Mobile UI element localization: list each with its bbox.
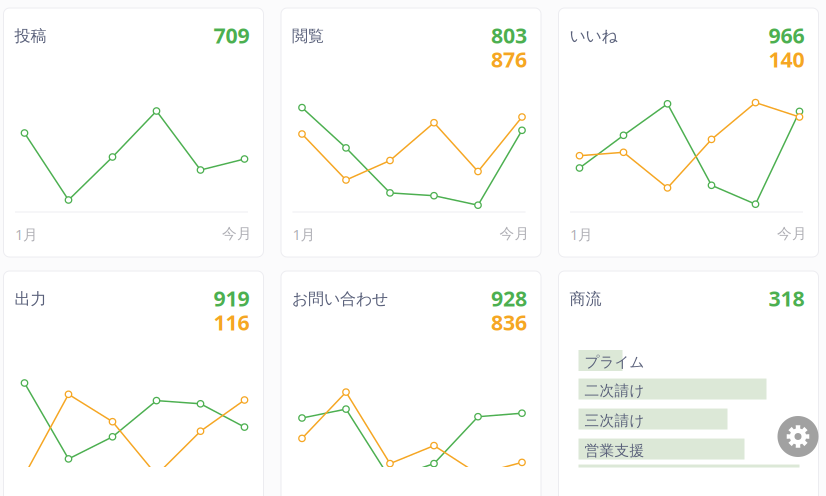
staticText: 商流 xyxy=(569,289,601,309)
staticText: 営業支援 xyxy=(584,441,644,459)
staticText: 803 xyxy=(491,21,527,49)
staticText: 1月 xyxy=(570,224,593,244)
staticText: 140 xyxy=(768,45,804,73)
staticText: 966 xyxy=(768,21,804,49)
staticText: 836 xyxy=(491,308,527,336)
staticText: 1月 xyxy=(15,224,38,244)
staticText: 三次請け xyxy=(584,411,644,429)
button[interactable]: 投稿 xyxy=(3,8,263,257)
button[interactable]: お問い合わせ xyxy=(281,271,541,496)
staticText: 閲覧 xyxy=(292,26,324,46)
staticText: プライム xyxy=(584,353,644,371)
staticText: 1月 xyxy=(292,224,315,244)
staticText: 709 xyxy=(213,21,249,49)
staticText: 投稿 xyxy=(14,26,46,46)
staticText: 876 xyxy=(491,45,527,73)
staticText: 今月 xyxy=(499,224,529,242)
staticText: いいね xyxy=(569,26,617,46)
staticText: 出力 xyxy=(14,289,46,309)
button[interactable]: 出力 xyxy=(3,271,263,496)
staticText: 919 xyxy=(213,284,249,312)
staticText: 318 xyxy=(768,284,804,312)
staticText: 今月 xyxy=(222,224,252,242)
button[interactable]: Settings xyxy=(777,416,818,457)
staticText: 二次請け xyxy=(584,381,644,399)
button[interactable]: いいね xyxy=(558,8,818,257)
button[interactable]: 閲覧 xyxy=(281,8,541,257)
staticText: 今月 xyxy=(777,224,807,242)
staticText: 928 xyxy=(491,284,527,312)
staticText: お問い合わせ xyxy=(292,289,388,309)
button[interactable]: 商流 xyxy=(558,271,818,496)
staticText: 116 xyxy=(213,308,249,336)
